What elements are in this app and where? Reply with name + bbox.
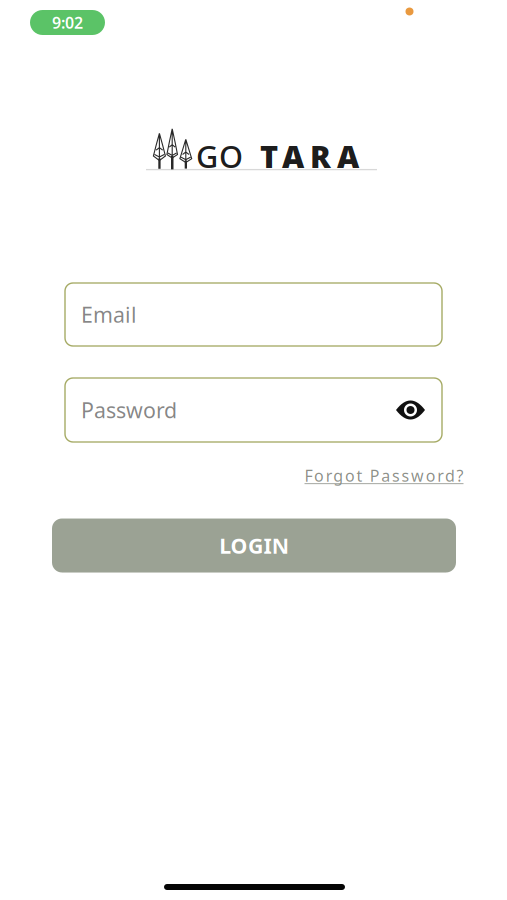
button[interactable]: Password xyxy=(65,378,442,442)
staticText: LOGIN xyxy=(219,531,289,560)
button[interactable]: Email xyxy=(65,283,442,346)
staticText: GO xyxy=(196,136,243,176)
button[interactable]: Forgot Password? xyxy=(304,465,463,486)
button[interactable]: Show password xyxy=(390,390,430,430)
staticText: Email xyxy=(81,300,137,329)
staticText: TARA xyxy=(260,136,359,176)
button[interactable]: LOGIN xyxy=(52,518,456,572)
staticText: Forgot Password? xyxy=(304,465,463,486)
staticText: Password xyxy=(81,396,177,424)
staticText: 9:02 xyxy=(52,12,83,33)
